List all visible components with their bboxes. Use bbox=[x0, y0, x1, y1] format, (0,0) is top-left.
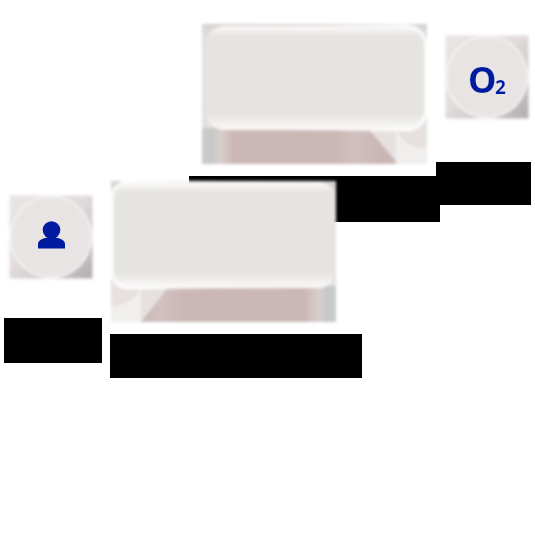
button[interactable]: Your profile picture bbox=[9, 195, 93, 279]
staticText: O bbox=[468, 55, 497, 104]
button[interactable]: Message from O2 bbox=[202, 24, 428, 165]
button[interactable]: Your message bbox=[111, 181, 337, 323]
staticText: 2 bbox=[495, 74, 506, 100]
button[interactable]: O2 profile picture bbox=[445, 36, 529, 120]
